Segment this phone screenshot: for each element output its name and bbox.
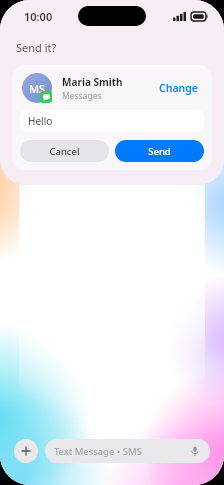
staticText: 10:00 <box>24 9 53 24</box>
button[interactable]: Change <box>155 77 202 99</box>
staticText: Cancel <box>49 145 80 158</box>
staticText: Text Message • SMS <box>54 445 189 458</box>
staticText: Change <box>159 81 198 95</box>
button[interactable]: Send <box>115 140 204 162</box>
staticText: Maria Smith <box>62 75 123 89</box>
button[interactable]: Hello <box>20 110 204 132</box>
staticText: MS <box>29 81 46 96</box>
staticText: Send <box>148 145 171 158</box>
button[interactable]: Add attachment <box>14 439 38 463</box>
staticText: Messages <box>62 90 102 102</box>
button[interactable]: Cancel <box>20 140 109 162</box>
button[interactable]: Dictate <box>189 445 201 457</box>
staticText: Hello <box>28 114 53 128</box>
button[interactable]: Text Message • SMS <box>45 439 210 463</box>
staticText: Send it? <box>16 40 57 55</box>
